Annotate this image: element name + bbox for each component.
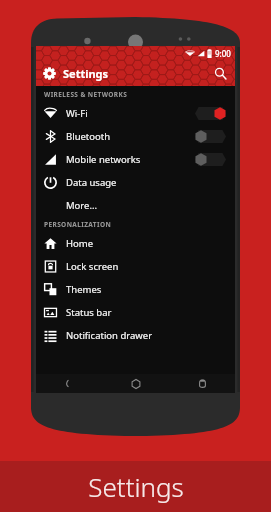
button[interactable]: Bluetooth bbox=[36, 125, 235, 148]
button[interactable]: Wi-Fi bbox=[36, 102, 235, 125]
staticText: PERSONALIZATION bbox=[44, 220, 112, 229]
button[interactable]: More... bbox=[36, 194, 235, 216]
staticText: WIRELESS & NETWORKS bbox=[44, 90, 128, 99]
button[interactable]: Recent apps bbox=[169, 374, 235, 393]
staticText: Home bbox=[66, 237, 94, 250]
button[interactable]: Home bbox=[103, 374, 169, 393]
staticText: 9:00 bbox=[215, 48, 231, 59]
button[interactable]: Status bar bbox=[36, 301, 235, 324]
button[interactable]: Home bbox=[36, 232, 235, 255]
button[interactable]: Notification drawer bbox=[36, 324, 235, 347]
button[interactable]: Toggle on bbox=[195, 107, 226, 120]
button[interactable]: Lock screen bbox=[36, 255, 235, 278]
staticText: Mobile networks bbox=[66, 153, 141, 166]
button[interactable]: Data usage bbox=[36, 171, 235, 194]
button[interactable]: Settings icon bbox=[43, 67, 56, 80]
staticText: Wi-Fi bbox=[66, 107, 88, 120]
button[interactable]: Toggle off bbox=[195, 130, 226, 143]
staticText: Settings bbox=[88, 469, 184, 504]
staticText: Lock screen bbox=[66, 260, 119, 273]
staticText: Notification drawer bbox=[66, 329, 153, 342]
button[interactable]: Search bbox=[214, 67, 227, 80]
staticText: Data usage bbox=[66, 176, 117, 189]
button[interactable]: Back bbox=[36, 374, 103, 393]
staticText: Settings bbox=[63, 66, 109, 81]
staticText: Status bar bbox=[66, 306, 112, 319]
staticText: More... bbox=[66, 199, 98, 212]
staticText: Themes bbox=[66, 283, 102, 296]
button[interactable]: Themes bbox=[36, 278, 235, 301]
button[interactable]: Toggle off bbox=[195, 153, 226, 166]
staticText: Bluetooth bbox=[66, 130, 111, 143]
button[interactable]: Mobile networks bbox=[36, 148, 235, 171]
